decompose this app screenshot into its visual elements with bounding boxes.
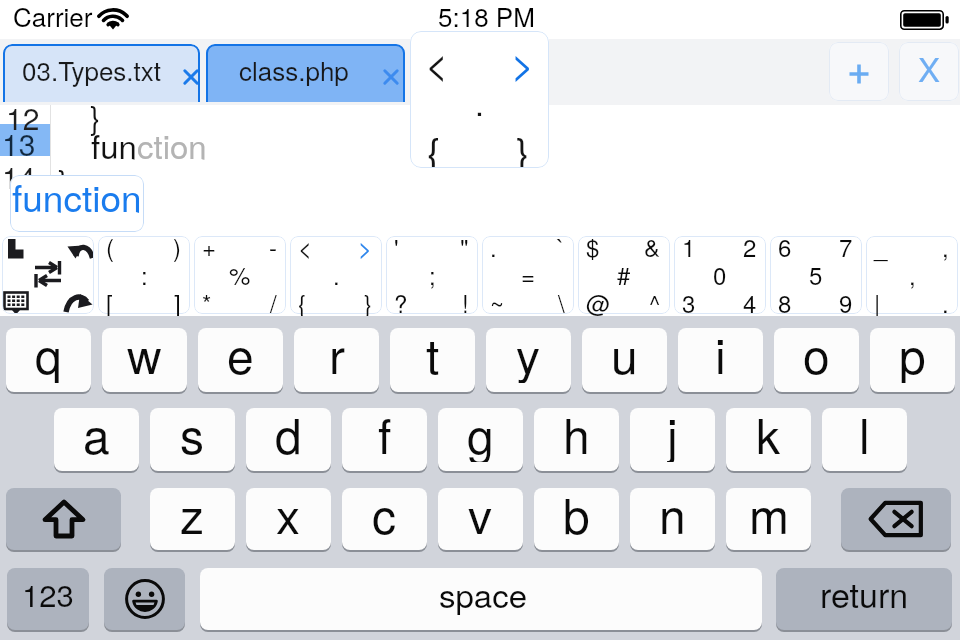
staticText: 0: [713, 257, 727, 291]
button[interactable]: y: [486, 328, 571, 392]
button[interactable]: l: [822, 408, 907, 471]
staticText: x: [276, 488, 301, 541]
staticText: function: [12, 175, 142, 223]
staticText: 14: [2, 155, 36, 198]
staticText: {: [298, 285, 307, 319]
staticText: 9: [839, 285, 853, 319]
button[interactable]: v: [438, 488, 523, 550]
button[interactable]: x: [246, 488, 331, 550]
button[interactable]: [482, 236, 574, 314]
staticText: c: [372, 488, 397, 541]
button[interactable]: [674, 236, 766, 314]
staticText: q: [35, 328, 62, 383]
staticText: z: [180, 488, 205, 541]
button[interactable]: w: [102, 328, 187, 392]
staticText: n: [659, 488, 686, 541]
staticText: 123: [22, 571, 74, 615]
staticText: .: [333, 257, 340, 291]
staticText: p: [899, 328, 926, 383]
staticText: %: [229, 257, 251, 291]
staticText: b: [563, 488, 590, 541]
staticText: a: [83, 408, 110, 462]
staticText: }: [58, 157, 69, 201]
button[interactable]: Backspace: [841, 488, 951, 550]
staticText: |: [874, 285, 881, 319]
staticText: +: [202, 229, 217, 263]
staticText: >: [511, 33, 535, 90]
staticText: \: [558, 285, 565, 319]
button[interactable]: b: [534, 488, 619, 550]
staticText: m: [749, 488, 789, 541]
button[interactable]: p: [870, 328, 955, 392]
staticText: g: [467, 408, 494, 462]
button[interactable]: j: [630, 408, 715, 471]
button[interactable]: n: [630, 488, 715, 550]
staticText: 2: [743, 229, 757, 263]
button[interactable]: return: [776, 568, 952, 630]
staticText: 13: [2, 122, 36, 165]
button[interactable]: c: [342, 488, 427, 550]
button[interactable]: New file: [829, 42, 889, 101]
staticText: t: [426, 328, 440, 383]
button[interactable]: s: [150, 408, 235, 471]
staticText: o: [803, 328, 830, 383]
button[interactable]: z: [150, 488, 235, 550]
staticText: (: [106, 229, 114, 263]
staticText: .: [942, 285, 949, 319]
staticText: -: [269, 229, 277, 263]
button[interactable]: Close file: [899, 42, 959, 101]
staticText: #: [617, 257, 631, 291]
staticText: fun: [91, 121, 137, 168]
button[interactable]: function: [10, 175, 144, 232]
button[interactable]: [290, 236, 382, 314]
staticText: <: [298, 229, 313, 263]
staticText: ]: [174, 285, 181, 319]
staticText: e: [227, 328, 254, 383]
button[interactable]: d: [246, 408, 331, 471]
button[interactable]: m: [726, 488, 811, 550]
staticText: space: [439, 570, 528, 617]
button[interactable]: [194, 236, 286, 314]
button[interactable]: Shift: [6, 488, 121, 550]
staticText: d: [275, 408, 302, 462]
staticText: &: [644, 229, 661, 263]
button[interactable]: class.php: [206, 44, 405, 108]
staticText: :: [141, 257, 148, 291]
button[interactable]: [770, 236, 862, 314]
staticText: !: [462, 285, 469, 319]
button[interactable]: [98, 236, 190, 314]
button[interactable]: Tab, undo and redo: [2, 236, 94, 314]
staticText: ": [460, 229, 469, 263]
button[interactable]: Emoji: [104, 568, 185, 630]
staticText: l: [859, 408, 870, 462]
button[interactable]: 03.Types.txt: [3, 44, 200, 108]
staticText: 12: [6, 96, 40, 139]
staticText: ): [173, 229, 181, 263]
button[interactable]: [866, 236, 958, 314]
button[interactable]: e: [198, 328, 283, 392]
staticText: /: [270, 285, 277, 319]
staticText: ^: [649, 285, 661, 319]
button[interactable]: q: [6, 328, 91, 392]
staticText: _: [874, 229, 888, 263]
button[interactable]: t: [390, 328, 475, 392]
staticText: k: [756, 408, 781, 462]
button[interactable]: [578, 236, 670, 314]
staticText: }: [90, 93, 101, 137]
staticText: ;: [429, 257, 436, 291]
staticText: Carrier: [13, 0, 93, 34]
staticText: 1: [682, 229, 696, 263]
button[interactable]: f: [342, 408, 427, 471]
button[interactable]: g: [438, 408, 523, 471]
button[interactable]: a: [54, 408, 139, 471]
button[interactable]: i: [678, 328, 763, 392]
button[interactable]: o: [774, 328, 859, 392]
button[interactable]: k: [726, 408, 811, 471]
button[interactable]: h: [534, 408, 619, 471]
button[interactable]: space: [200, 568, 762, 630]
button[interactable]: 123: [7, 568, 89, 630]
button[interactable]: r: [294, 328, 379, 392]
staticText: .: [490, 229, 497, 263]
button[interactable]: [386, 236, 478, 314]
button[interactable]: u: [582, 328, 667, 392]
